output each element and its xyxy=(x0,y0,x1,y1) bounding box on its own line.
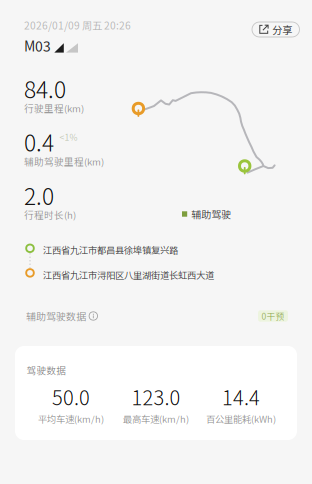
staticText: 最高车速(km/h) xyxy=(123,412,189,425)
staticText: 50.0 xyxy=(52,382,90,411)
staticText: 0干预 xyxy=(261,310,284,322)
staticText: 行程时长(h) xyxy=(24,208,76,221)
staticText: 0.4 xyxy=(24,125,54,158)
staticText: 14.4 xyxy=(222,382,260,411)
staticText: 123.0 xyxy=(131,382,180,411)
staticText: 84.0 xyxy=(24,72,66,105)
staticText: 驾驶数据 xyxy=(26,363,66,377)
staticText: 百公里能耗(kWh) xyxy=(206,412,276,425)
staticText: 2026/01/09 周五 20:26 xyxy=(24,17,131,32)
staticText: 江西省九江市浔阳区八里湖街道长虹西大道 xyxy=(43,268,214,281)
staticText: 行驶里程(km) xyxy=(24,101,84,115)
staticText: 江西省九江市都昌县徐埠镇复兴路 xyxy=(43,243,178,256)
staticText: 辅助驾驶数据 xyxy=(26,309,86,323)
staticText: 平均车速(km/h) xyxy=(38,412,104,425)
staticText: 2.0 xyxy=(24,179,54,211)
staticText: M03 xyxy=(24,35,51,55)
staticText: <1% xyxy=(59,131,77,143)
staticText: 辅助驾驶 xyxy=(191,207,231,221)
staticText: 分享 xyxy=(272,22,292,37)
staticText: 辅助驾驶里程(km) xyxy=(24,154,104,168)
button[interactable]: 分享 xyxy=(252,22,299,37)
